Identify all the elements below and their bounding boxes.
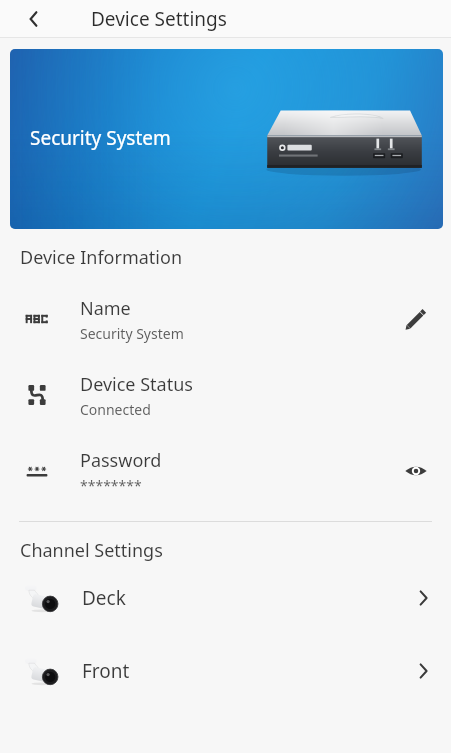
staticText: Front — [82, 658, 413, 684]
staticText: Connected — [80, 400, 151, 419]
staticText: Password — [80, 448, 162, 473]
button[interactable]: Deck — [0, 574, 451, 622]
staticText: Device Status — [80, 372, 193, 397]
staticText: ******** — [80, 476, 142, 495]
button[interactable]: Edit name — [397, 300, 435, 338]
staticText: Security System — [30, 125, 171, 151]
button[interactable]: Show password — [397, 452, 435, 490]
button[interactable]: Name — [0, 281, 451, 357]
staticText: Channel Settings — [20, 538, 163, 563]
staticText: Device Settings — [91, 6, 227, 32]
staticText: Deck — [82, 585, 413, 611]
staticText: Name — [80, 296, 131, 321]
button[interactable]: Security System — [10, 49, 443, 229]
button[interactable]: Password — [0, 433, 451, 509]
button[interactable]: Front — [0, 647, 451, 695]
staticText: Security System — [80, 324, 184, 343]
button[interactable]: Back — [18, 3, 50, 35]
button[interactable]: Device Status — [0, 357, 451, 433]
staticText: Device Information — [20, 245, 183, 270]
